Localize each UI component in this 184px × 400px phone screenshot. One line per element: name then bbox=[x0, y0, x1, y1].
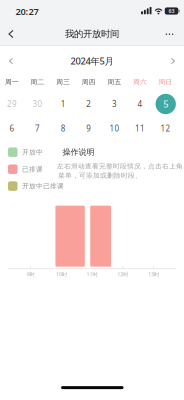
staticText: 8 bbox=[61, 123, 66, 134]
staticText: 10 bbox=[109, 123, 119, 134]
staticText: 我的开放时间 bbox=[65, 28, 119, 40]
staticText: 11时 bbox=[87, 271, 98, 278]
staticText: 13时 bbox=[148, 271, 159, 278]
button[interactable]: 29 bbox=[7, 99, 17, 109]
staticText: 周二 bbox=[31, 78, 45, 86]
button[interactable]: 8 bbox=[61, 123, 66, 134]
staticText: 周日 bbox=[159, 78, 173, 86]
staticText: 周四 bbox=[82, 78, 96, 86]
staticText: 周五 bbox=[107, 78, 121, 86]
staticText: 3 bbox=[112, 99, 117, 109]
staticText: 20:27 bbox=[15, 5, 38, 18]
staticText: 9 bbox=[86, 123, 91, 134]
button[interactable]: 10 bbox=[109, 123, 119, 134]
button[interactable]: 11 bbox=[135, 123, 145, 134]
button[interactable] bbox=[5, 28, 17, 40]
button[interactable]: 2 bbox=[86, 99, 91, 109]
button[interactable] bbox=[168, 56, 178, 66]
staticText: 菜单，可添加或删除时段。 bbox=[58, 171, 142, 180]
staticText: 周三 bbox=[56, 78, 70, 86]
staticText: 周一 bbox=[5, 78, 19, 86]
staticText: 63 bbox=[168, 7, 174, 15]
button[interactable]: 5 bbox=[155, 94, 176, 114]
button[interactable] bbox=[162, 29, 176, 39]
button[interactable]: 12 bbox=[161, 123, 171, 134]
staticText: 12 bbox=[161, 123, 171, 134]
button[interactable]: 3 bbox=[112, 99, 117, 109]
staticText: 2024年5月 bbox=[70, 55, 113, 67]
staticText: 12时 bbox=[117, 271, 128, 278]
staticText: 左右滑动查看完整时段情况，点击右上角 bbox=[57, 162, 183, 170]
staticText: 开放中已排课 bbox=[22, 182, 64, 190]
staticText: 9时 bbox=[27, 271, 35, 278]
staticText: 2 bbox=[86, 99, 91, 109]
button[interactable]: 7 bbox=[35, 123, 40, 134]
staticText: 4 bbox=[137, 99, 142, 109]
staticText: 6 bbox=[9, 123, 14, 134]
staticText: 已排课 bbox=[22, 165, 43, 173]
button[interactable] bbox=[6, 56, 16, 66]
staticText: 周六 bbox=[133, 78, 147, 86]
staticText: 操作说明 bbox=[62, 147, 94, 157]
staticText: 10时 bbox=[56, 271, 67, 278]
staticText: 5 bbox=[163, 98, 168, 110]
staticText: 29 bbox=[7, 99, 17, 109]
button[interactable]: 1 bbox=[61, 99, 66, 109]
staticText: 11 bbox=[135, 123, 145, 134]
staticText: 30 bbox=[33, 99, 43, 109]
button[interactable]: 30 bbox=[33, 99, 43, 109]
staticText: 1 bbox=[61, 99, 66, 109]
button[interactable]: 4 bbox=[137, 99, 142, 109]
button[interactable]: 9 bbox=[86, 123, 91, 134]
staticText: 开放中 bbox=[22, 148, 43, 156]
staticText: 7 bbox=[35, 123, 40, 134]
button[interactable]: 6 bbox=[9, 123, 14, 134]
